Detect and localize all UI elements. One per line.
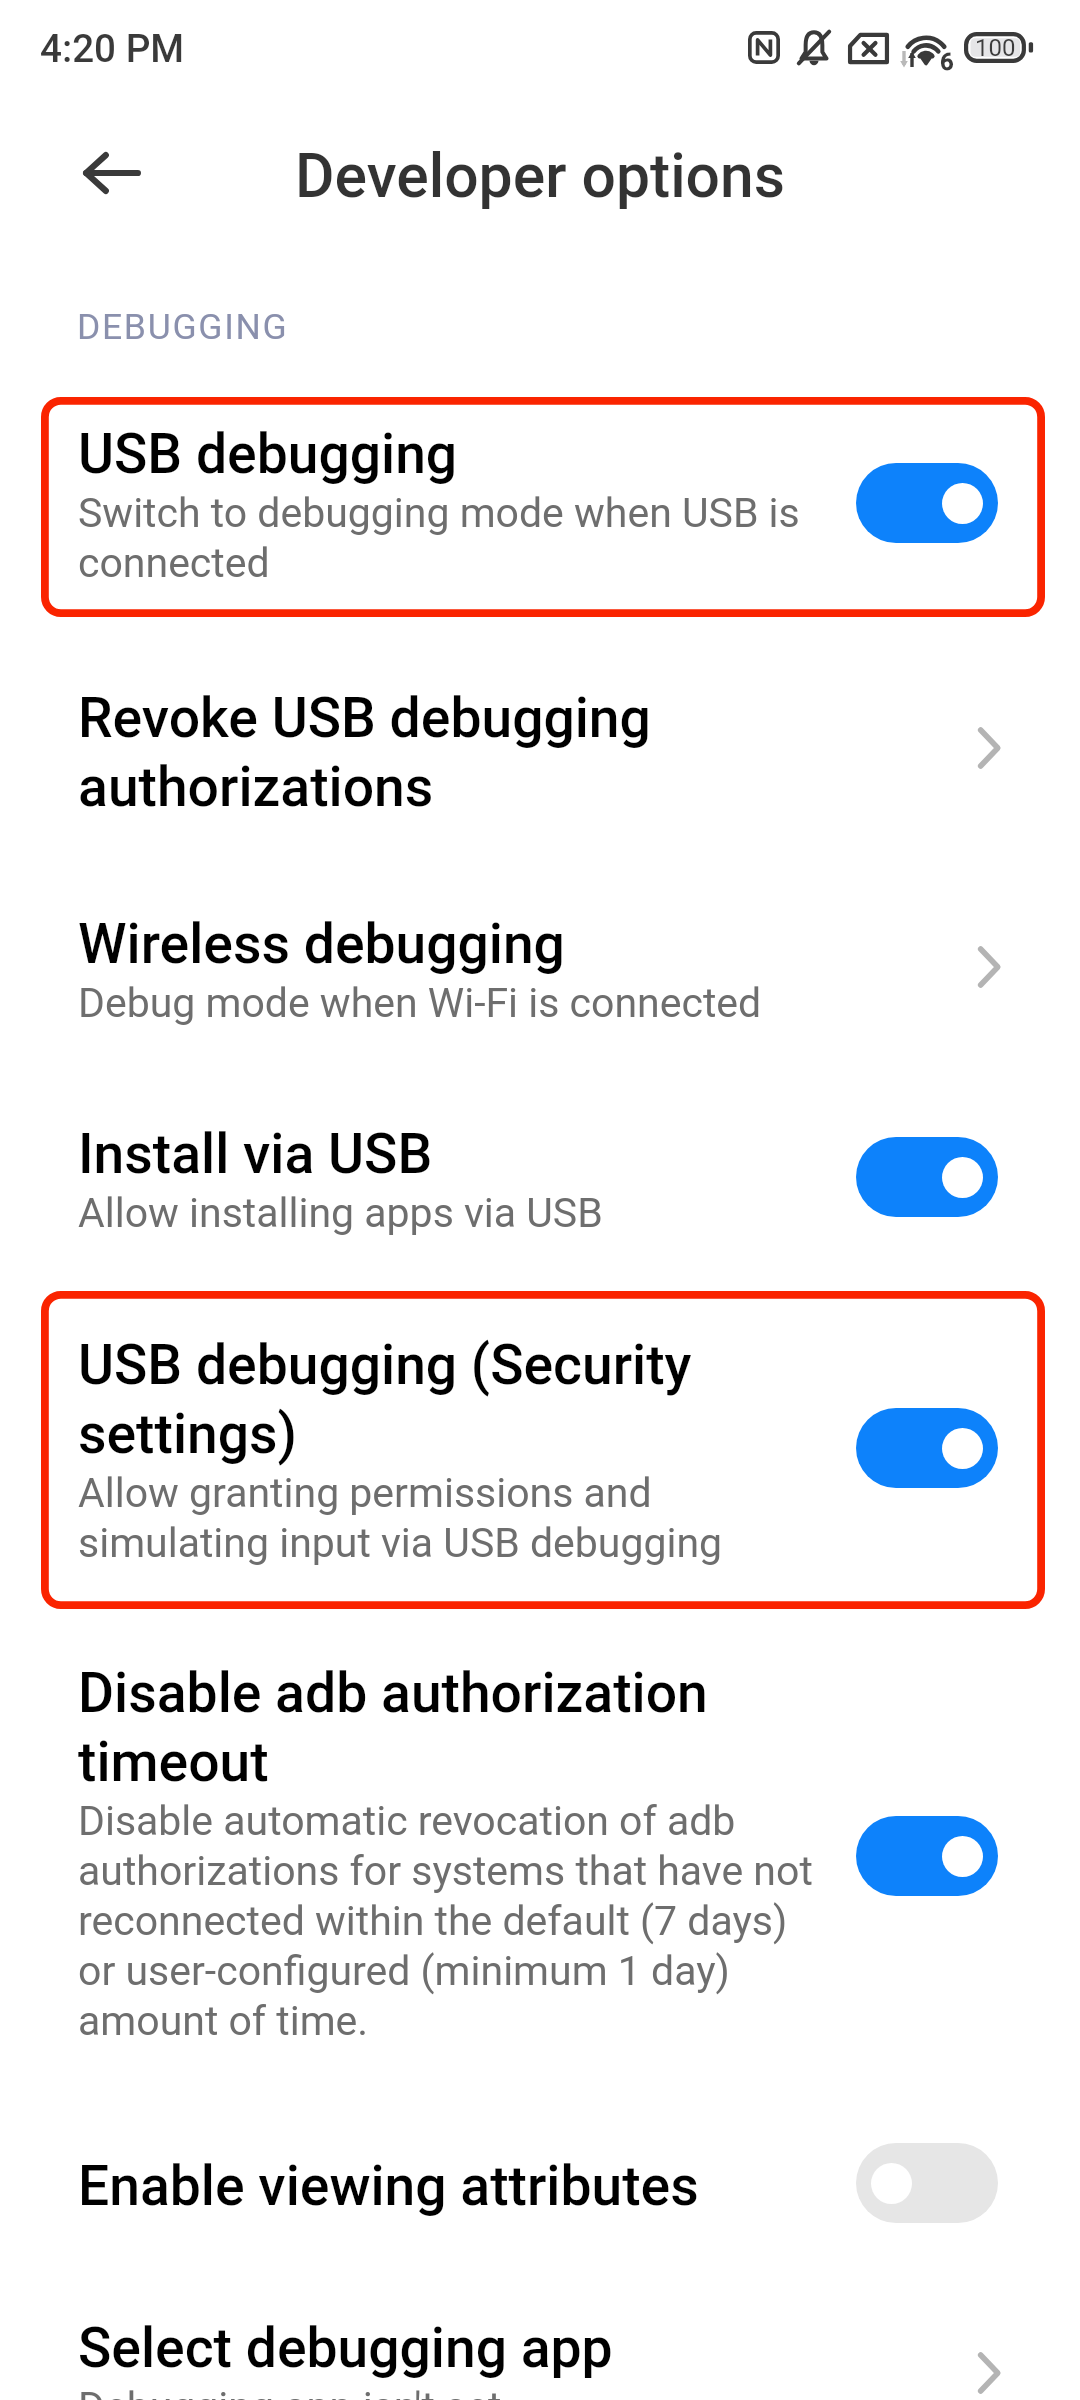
staticText: DEBUGGING <box>77 304 289 348</box>
staticText: Revoke USB debugging authorizations <box>78 682 823 820</box>
button[interactable]: Back <box>64 125 160 221</box>
staticText: USB debugging (Security settings) <box>78 1329 823 1467</box>
button[interactable] <box>0 1630 1080 2075</box>
button[interactable]: Open <box>949 927 1029 1007</box>
staticText: USB debugging <box>78 418 458 487</box>
button[interactable] <box>0 1285 1080 1615</box>
button[interactable] <box>0 1090 1080 1265</box>
staticText: 6 <box>940 49 954 75</box>
button[interactable] <box>0 880 1080 1060</box>
button[interactable] <box>0 2280 1080 2400</box>
staticText: Debug mode when Wi-Fi is connected <box>78 977 762 1027</box>
staticText: 4:20 PM <box>40 22 185 72</box>
staticText: 100 <box>975 35 1016 61</box>
staticText: Enable viewing attributes <box>78 2150 699 2219</box>
staticText: Allow installing apps via USB <box>78 1187 603 1237</box>
staticText: Select debugging app <box>78 2312 613 2381</box>
button[interactable]: Toggle off <box>856 2143 998 2223</box>
staticText: Debugging app isn't set <box>78 2381 502 2400</box>
button[interactable] <box>0 640 1080 860</box>
button[interactable]: Toggle on <box>856 1137 998 1217</box>
staticText: Switch to debugging mode when USB is con… <box>78 487 823 587</box>
button[interactable]: Open <box>949 2333 1029 2400</box>
button[interactable]: Toggle on <box>856 463 998 543</box>
button[interactable] <box>0 2110 1080 2255</box>
button[interactable]: Toggle on <box>856 1816 998 1896</box>
staticText: Developer options <box>0 140 1080 212</box>
staticText: Disable adb authorization timeout <box>78 1657 823 1795</box>
button[interactable] <box>0 390 1080 625</box>
staticText: Disable automatic revocation of adb auth… <box>78 1795 823 2045</box>
staticText: Wireless debugging <box>78 908 565 977</box>
staticText: Allow granting permissions and simulatin… <box>78 1467 823 1567</box>
button[interactable]: Toggle on <box>856 1408 998 1488</box>
button[interactable]: Open <box>949 708 1029 788</box>
staticText: Install via USB <box>78 1118 433 1187</box>
